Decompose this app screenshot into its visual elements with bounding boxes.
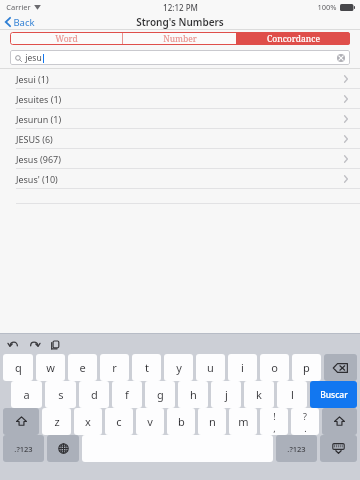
button[interactable]: Clear text [336, 53, 346, 63]
staticText: t [145, 360, 149, 375]
staticText: Carrier [6, 2, 31, 12]
button[interactable]: .?123 [3, 435, 44, 462]
staticText: 12:12 PM [163, 2, 198, 13]
button[interactable]: Shift [3, 408, 39, 435]
staticText: jesu [25, 52, 42, 64]
staticText: Jesui (1) [16, 73, 49, 85]
staticText: k [256, 387, 262, 402]
button[interactable]: h [178, 381, 208, 408]
button[interactable]: c [105, 408, 133, 435]
button[interactable]: u [196, 354, 225, 381]
staticText: Concordance [267, 33, 320, 45]
staticText: u [207, 360, 214, 375]
staticText: 100% [317, 2, 337, 12]
staticText: Jesurun (1) [16, 113, 62, 125]
staticText: a [23, 387, 30, 402]
button[interactable]: e [68, 354, 97, 381]
staticText: p [303, 360, 310, 375]
button[interactable]: Paste [48, 337, 62, 351]
button[interactable]: jesu [10, 50, 350, 65]
button[interactable]: Buscar [310, 381, 357, 408]
staticText: Buscar [320, 389, 348, 401]
staticText: .?123 [287, 444, 306, 454]
staticText: Number [163, 33, 197, 45]
button[interactable]: i [228, 354, 257, 381]
staticText: ? [303, 410, 307, 422]
button[interactable]: k [244, 381, 274, 408]
button[interactable]: z [42, 408, 71, 435]
button[interactable]: m [229, 408, 257, 435]
staticText: x [85, 414, 91, 429]
button[interactable]: f [112, 381, 142, 408]
button[interactable]: Shift [322, 408, 357, 435]
button[interactable]: Hide keyboard [320, 435, 357, 462]
staticText: o [271, 360, 278, 375]
button[interactable]: Switch keyboard [47, 435, 79, 462]
staticText: m [238, 414, 249, 429]
button[interactable]: b [167, 408, 195, 435]
staticText: Strong's Numbers [136, 15, 224, 29]
button[interactable]: g [145, 381, 175, 408]
staticText: Word [55, 33, 78, 45]
staticText: b [178, 414, 185, 429]
staticText: d [91, 387, 98, 402]
button[interactable]: q [3, 354, 33, 381]
staticText: .?123 [14, 444, 33, 454]
staticText: l [291, 387, 294, 402]
staticText: . [304, 422, 307, 434]
button[interactable]: s [45, 381, 76, 408]
button[interactable]: Jesui (1) [0, 69, 360, 89]
button[interactable]: Backspace [324, 354, 357, 381]
staticText: JESUS (6) [16, 133, 53, 145]
staticText: n [209, 414, 216, 429]
staticText: Jesus (967) [16, 153, 61, 165]
staticText: z [54, 414, 60, 429]
staticText: s [58, 387, 64, 402]
button[interactable]: p [292, 354, 321, 381]
staticText: Back [13, 16, 35, 28]
button[interactable]: .?123 [276, 435, 317, 462]
staticText: e [79, 360, 86, 375]
button[interactable]: d [79, 381, 109, 408]
button[interactable]: j [211, 381, 241, 408]
button[interactable]: r [100, 354, 129, 381]
staticText: v [147, 414, 153, 429]
button[interactable]: Word [10, 32, 122, 45]
button[interactable]: o [260, 354, 289, 381]
staticText: h [190, 387, 197, 402]
staticText: y [176, 360, 182, 375]
button[interactable]: Number [123, 32, 236, 45]
staticText: w [46, 360, 55, 375]
button[interactable]: ? [291, 408, 319, 435]
button[interactable]: Jesus (967) [0, 149, 360, 169]
staticText: j [225, 387, 228, 402]
button[interactable]: JESUS (6) [0, 129, 360, 149]
staticText: g [157, 387, 164, 402]
staticText: ! [273, 410, 276, 422]
button[interactable]: Redo [27, 337, 41, 351]
button[interactable]: Back [0, 14, 43, 30]
staticText: r [112, 360, 117, 375]
staticText: f [125, 387, 129, 402]
button[interactable]: ! [260, 408, 288, 435]
button[interactable]: y [164, 354, 193, 381]
button[interactable]: Undo [6, 337, 20, 351]
button[interactable]: x [74, 408, 102, 435]
button[interactable]: a [11, 381, 42, 408]
button[interactable]: Jesus' (10) [0, 169, 360, 189]
button[interactable]: Jesuites (1) [0, 89, 360, 109]
staticText: q [15, 360, 22, 375]
button[interactable]: Jesurun (1) [0, 109, 360, 129]
button[interactable]: n [198, 408, 226, 435]
button[interactable]: l [277, 381, 307, 408]
staticText: Jesus' (10) [16, 173, 58, 185]
staticText: i [241, 360, 244, 375]
button[interactable]: v [136, 408, 164, 435]
staticText: c [116, 414, 122, 429]
staticText: , [273, 422, 276, 434]
button[interactable]: w [36, 354, 65, 381]
staticText: Jesuites (1) [16, 93, 62, 105]
button[interactable]: Concordance [237, 32, 350, 45]
button[interactable]: t [132, 354, 161, 381]
